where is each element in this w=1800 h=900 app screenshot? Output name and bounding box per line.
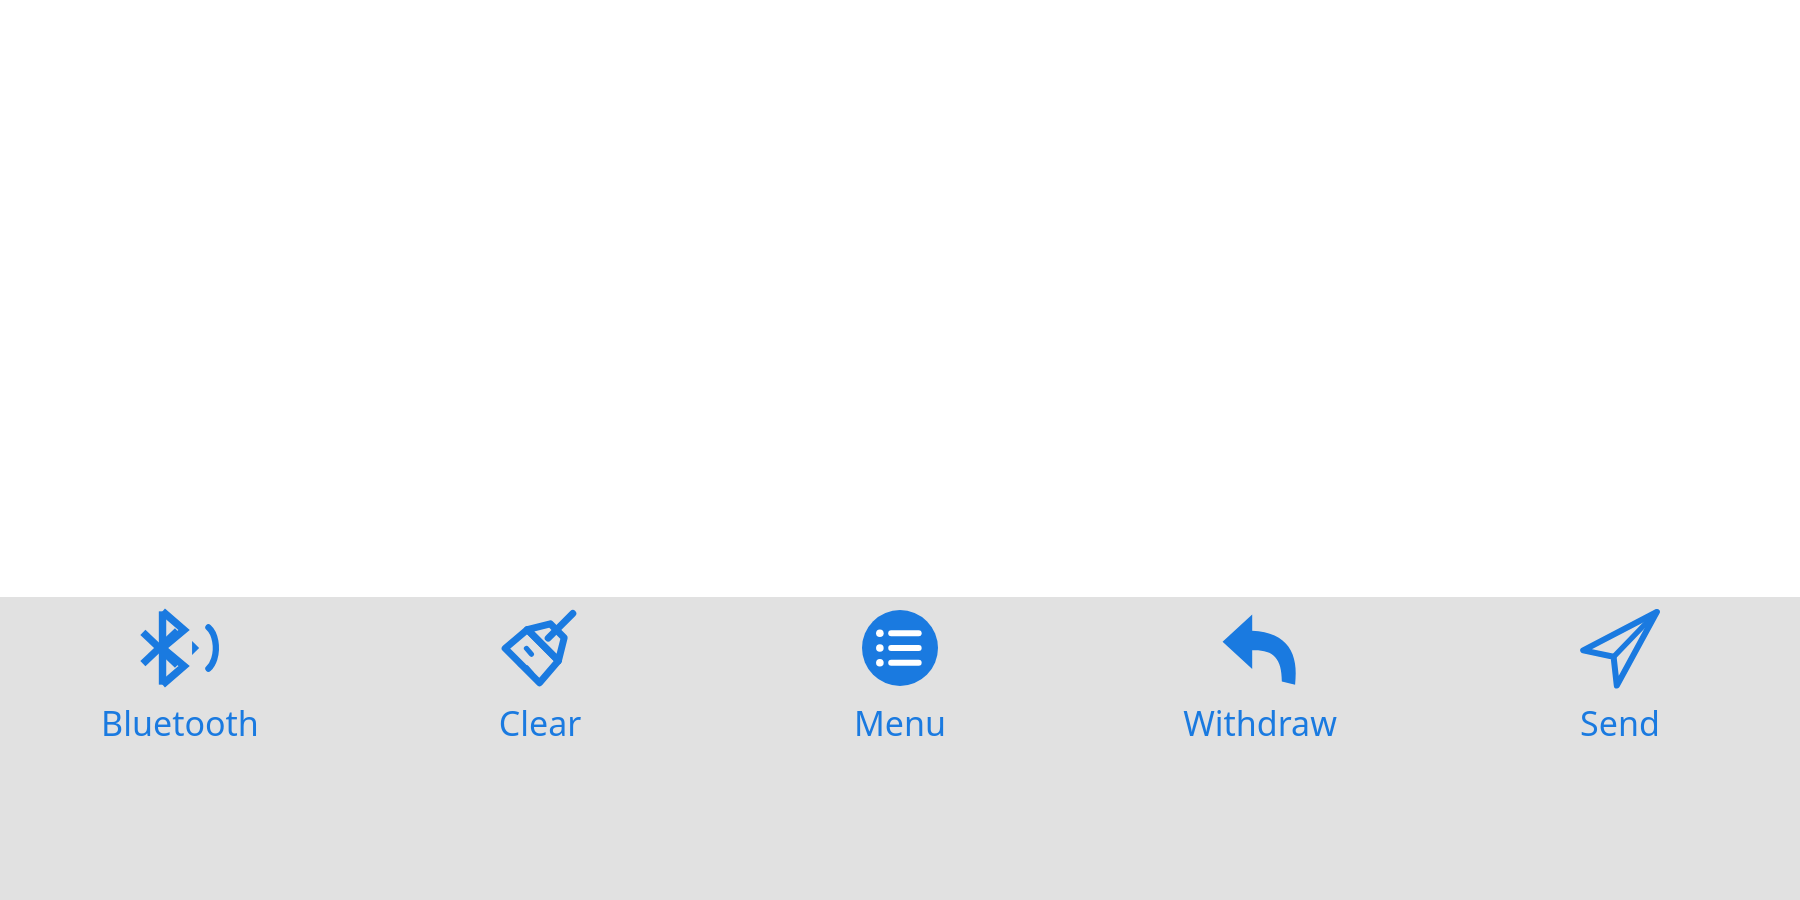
staticText: Clear <box>360 700 720 746</box>
button[interactable]: Send <box>1440 597 1800 746</box>
staticText: Withdraw <box>1080 700 1440 746</box>
staticText: Send <box>1440 700 1800 746</box>
staticText: Menu <box>720 700 1080 746</box>
button[interactable]: Withdraw <box>1080 597 1440 746</box>
button[interactable]: Clear <box>360 597 720 746</box>
button[interactable]: Bluetooth <box>0 597 360 746</box>
button[interactable]: Menu <box>720 597 1080 746</box>
staticText: Bluetooth <box>0 700 360 746</box>
